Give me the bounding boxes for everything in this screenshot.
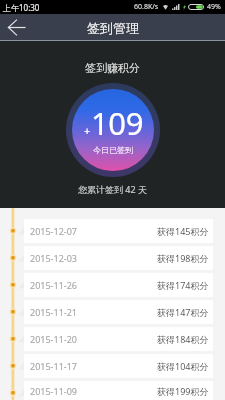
staticText: 获得147积分 bbox=[157, 306, 209, 318]
staticText: 获得174积分 bbox=[157, 279, 209, 291]
button[interactable]: 2015-12-07 bbox=[24, 219, 213, 243]
staticText: 获得104积分 bbox=[157, 360, 209, 372]
staticText: 签到赚积分 bbox=[85, 61, 140, 75]
staticText: 2015-11-26 bbox=[30, 279, 77, 291]
staticText: 2015-11-20 bbox=[30, 333, 77, 345]
staticText: 109 bbox=[91, 102, 143, 144]
staticText: 60.8K/s bbox=[134, 2, 159, 12]
staticText: 上午10:30 bbox=[3, 2, 40, 13]
button[interactable]: 2015-11-21 bbox=[24, 300, 213, 324]
button[interactable]: 2015-11-26 bbox=[24, 273, 213, 297]
button[interactable]: + bbox=[72, 89, 154, 171]
staticText: + bbox=[84, 123, 91, 138]
button[interactable]: 2015-12-03 bbox=[24, 246, 213, 270]
staticText: 2015-12-07 bbox=[30, 225, 77, 237]
staticText: 签到管理 bbox=[87, 20, 139, 36]
button[interactable]: 2015-11-20 bbox=[24, 327, 213, 351]
staticText: 获得199积分 bbox=[157, 385, 209, 397]
button[interactable]: 2015-11-09 bbox=[24, 381, 213, 400]
staticText: 获得198积分 bbox=[157, 252, 209, 264]
staticText: 2015-12-03 bbox=[30, 252, 77, 264]
staticText: 您累计签到 42 天 bbox=[78, 183, 147, 195]
staticText: 2015-11-17 bbox=[30, 360, 77, 372]
button[interactable]: 2015-11-17 bbox=[24, 354, 213, 378]
staticText: 获得184积分 bbox=[157, 333, 209, 345]
staticText: 2015-11-21 bbox=[30, 306, 77, 318]
staticText: 2015-11-09 bbox=[30, 385, 77, 397]
button[interactable]: Back bbox=[0, 14, 32, 41]
staticText: 今日已签到 bbox=[93, 145, 133, 155]
staticText: 获得145积分 bbox=[157, 225, 209, 237]
staticText: 49% bbox=[207, 2, 221, 12]
